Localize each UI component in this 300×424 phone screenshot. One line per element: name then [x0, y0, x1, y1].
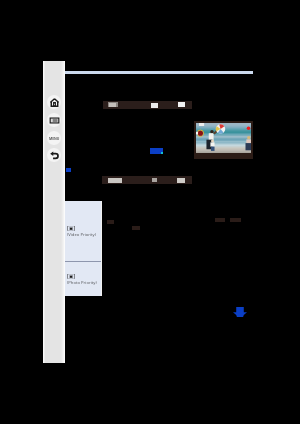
button[interactable]: [▣] — [65, 201, 101, 261]
button[interactable]: Scroll down — [233, 307, 247, 317]
staticText: MENU — [49, 136, 60, 141]
button[interactable]: Display — [47, 113, 61, 127]
staticText: [▣] — [67, 273, 76, 280]
button[interactable]: [▣] — [65, 262, 101, 296]
staticText: (Photo Priority) — [67, 280, 97, 286]
staticText: [▣] — [67, 225, 76, 232]
button[interactable] — [150, 148, 163, 154]
button[interactable]: Back — [47, 148, 61, 162]
button[interactable]: Menu — [47, 131, 61, 145]
button[interactable]: Home — [47, 95, 61, 109]
staticText: (Video Priority) — [67, 232, 96, 238]
